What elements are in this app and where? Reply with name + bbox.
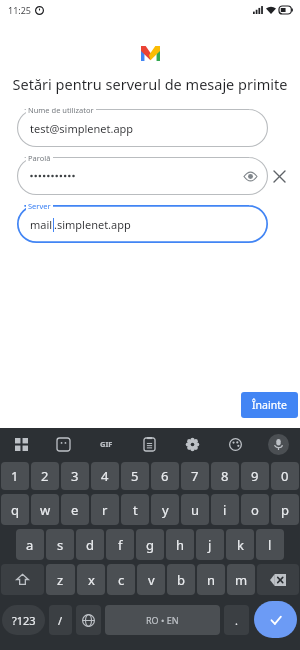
button[interactable]: Autocolante [42,428,85,460]
button[interactable]: h [166,529,194,560]
staticText: y [162,501,169,519]
button[interactable]: 9 [241,462,269,490]
staticText: 2 [41,467,49,485]
staticText: RO • EN [146,614,179,626]
staticText: v [148,571,155,589]
button[interactable]: c [107,564,135,595]
staticText: 8 [221,467,229,485]
button[interactable]: Setări [171,428,214,460]
button[interactable]: x [77,564,105,595]
staticText: test@simplenet.app [30,121,134,136]
button[interactable]: 4 [91,462,119,490]
staticText: x [88,571,95,589]
staticText: b [177,571,185,589]
staticText: 6 [161,467,169,485]
staticText: l [268,536,272,554]
button[interactable]: Schimbă limba [76,605,101,635]
button[interactable]: Shift [1,564,44,595]
button[interactable]: m [227,564,255,595]
staticText: z [57,571,64,589]
staticText: .simplenet.app [54,217,131,232]
button[interactable]: Teme [214,428,257,460]
staticText: a [26,536,34,554]
staticText: / [58,613,63,628]
button[interactable]: p [271,494,299,525]
button[interactable]: b [167,564,195,595]
staticText: i [223,501,227,519]
button[interactable]: e [61,494,89,525]
button[interactable]: 5 [121,462,149,490]
button[interactable]: 8 [211,462,239,490]
button[interactable]: d [76,529,104,560]
button[interactable]: 2 [31,462,59,490]
staticText: d [86,536,94,554]
staticText: t [133,501,138,519]
button[interactable]: g [136,529,164,560]
staticText: n [207,571,216,589]
button[interactable]: . [224,605,249,635]
button[interactable]: r [91,494,119,525]
button[interactable]: 0 [271,462,299,490]
button[interactable]: RO • EN [105,605,220,635]
button[interactable]: 3 [61,462,89,490]
button[interactable]: a [16,529,44,560]
staticText: h [176,536,185,554]
button[interactable]: j [196,529,224,560]
button[interactable]: / [49,605,72,635]
button[interactable]: v [137,564,165,595]
staticText: u [191,501,200,519]
staticText: 1 [11,467,19,485]
staticText: GIF [100,439,113,449]
staticText: Înainte [252,398,287,412]
staticText: 0 [281,467,289,485]
staticText: o [251,501,259,519]
staticText: mail [30,217,53,232]
staticText: Server [28,201,51,211]
button[interactable]: z [46,564,75,595]
staticText: m [235,571,248,589]
button[interactable]: u [181,494,209,525]
staticText: w [40,501,51,519]
button[interactable]: k [226,529,254,560]
button[interactable]: 1 [1,462,29,490]
button[interactable]: Backspace [257,564,299,595]
button[interactable]: q [1,494,29,525]
staticText: f [118,536,123,554]
staticText: Parolă [28,153,51,163]
button[interactable]: Vorbire [257,428,300,460]
staticText: Setări pentru serverul de mesaje primite [12,74,288,94]
staticText: 4 [101,467,109,485]
staticText: 5 [131,467,139,485]
button[interactable]: GIF [85,428,128,460]
staticText: r [102,501,108,519]
button[interactable]: 7 [181,462,209,490]
button[interactable]: w [31,494,59,525]
button[interactable]: Trimite [254,601,297,638]
button[interactable]: Clipboard [128,428,171,460]
button[interactable]: Afișează parola [242,168,258,184]
staticText: Nume de utilizator [28,105,94,115]
staticText: s [57,536,64,554]
button[interactable]: l [256,529,284,560]
button[interactable]: f [106,529,134,560]
staticText: 3 [71,467,79,485]
button[interactable]: s [46,529,74,560]
button[interactable]: y [151,494,179,525]
staticText: 9 [251,467,259,485]
button[interactable]: i [211,494,239,525]
button[interactable]: ?123 [2,605,45,635]
button[interactable]: o [241,494,269,525]
staticText: ?123 [12,613,36,628]
button[interactable]: 6 [151,462,179,490]
staticText: c [118,571,125,589]
button[interactable]: n [197,564,225,595]
button[interactable]: t [121,494,149,525]
button[interactable]: Aplicații [0,428,42,460]
button[interactable]: Înainte [241,392,298,418]
staticText: e [71,501,79,519]
staticText: 7 [191,467,199,485]
staticText: g [146,536,154,554]
staticText: 11:25 [8,4,32,16]
staticText: j [208,536,212,554]
button[interactable]: Șterge [268,165,290,187]
